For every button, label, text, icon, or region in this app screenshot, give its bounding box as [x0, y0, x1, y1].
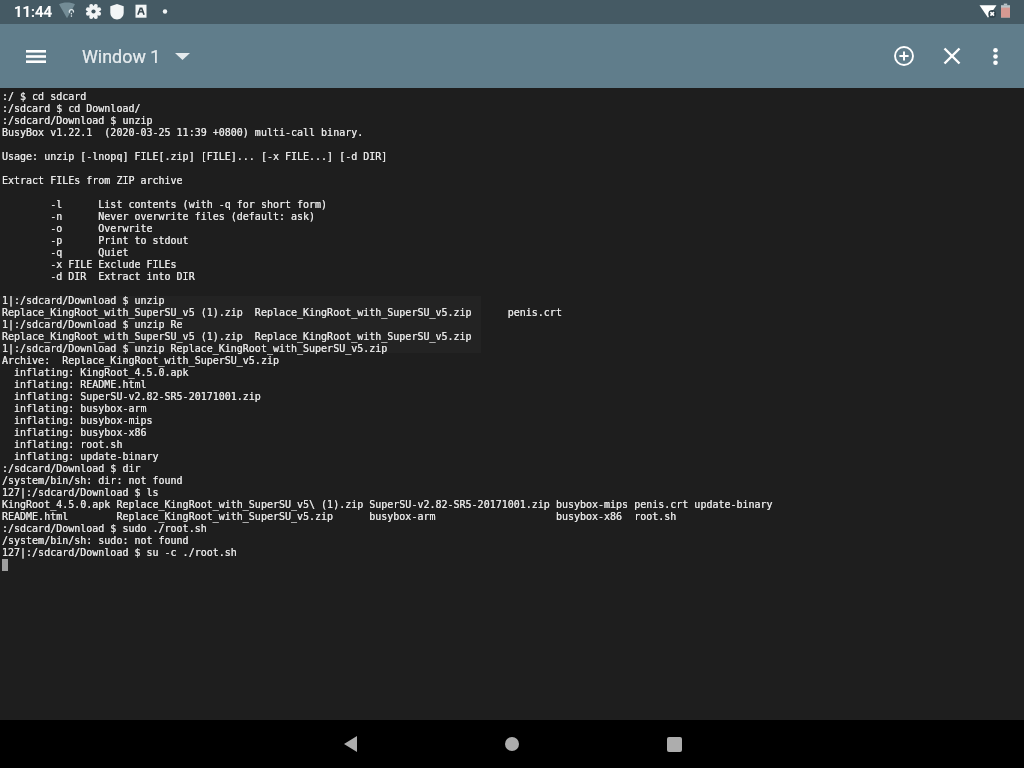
staticText: KingRoot_4.5.0.apk Replace_KingRoot_with… — [2, 499, 773, 511]
staticText: inflating: root.sh — [2, 439, 123, 451]
button[interactable]: Back — [326, 720, 374, 768]
button[interactable]: Close session — [928, 24, 976, 88]
staticText: 1|:/sdcard/Download $ unzip Replace_King… — [2, 343, 388, 355]
button[interactable]: Recent apps — [650, 720, 698, 768]
staticText: Replace_KingRoot_with_SuperSU_v5 (1).zip… — [2, 331, 472, 343]
staticText: Extract FILEs from ZIP archive — [2, 175, 183, 187]
button[interactable]: Open navigation drawer — [0, 24, 72, 88]
staticText: -d DIR Extract into DIR — [2, 271, 195, 283]
staticText: Replace_KingRoot_with_SuperSU_v5 (1).zip… — [2, 307, 562, 319]
staticText: -x FILE Exclude FILEs — [2, 259, 177, 271]
staticText: inflating: KingRoot_4.5.0.apk — [2, 367, 189, 379]
staticText: inflating: README.html — [2, 379, 147, 391]
staticText: :/sdcard/Download $ unzip — [2, 115, 153, 127]
button[interactable]: More options — [976, 24, 1014, 88]
staticText: -q Quiet — [2, 247, 129, 259]
staticText: 127|:/sdcard/Download $ su -c ./root.sh — [2, 547, 237, 559]
staticText: -p Print to stdout — [2, 235, 189, 247]
staticText: 1|:/sdcard/Download $ unzip Re — [2, 319, 183, 331]
staticText: Archive: Replace_KingRoot_with_SuperSU_v… — [2, 355, 279, 367]
staticText: README.html Replace_KingRoot_with_SuperS… — [2, 511, 677, 523]
button[interactable]: Window 1 — [72, 24, 202, 88]
staticText: :/sdcard/Download $ dir — [2, 463, 141, 475]
staticText: :/sdcard $ cd Download/ — [2, 103, 141, 115]
staticText: 1|:/sdcard/Download $ unzip — [2, 295, 165, 307]
staticText: /system/bin/sh: dir: not found — [2, 475, 183, 487]
staticText: 127|:/sdcard/Download $ ls — [2, 487, 159, 499]
staticText: inflating: busybox-mips — [2, 415, 153, 427]
staticText: inflating: busybox-x86 — [2, 427, 147, 439]
staticText: :/sdcard/Download $ sudo ./root.sh — [2, 523, 207, 535]
staticText: :/ $ cd sdcard — [2, 91, 87, 103]
staticText: 11:44 — [14, 3, 53, 21]
staticText: -l List contents (with -q for short form… — [2, 199, 328, 211]
staticText: inflating: busybox-arm — [2, 403, 147, 415]
staticText: BusyBox v1.22.1 (2020-03-25 11:39 +0800)… — [2, 127, 364, 139]
staticText: -o Overwrite — [2, 223, 153, 235]
staticText: Window 1 — [82, 46, 161, 67]
staticText: -n Never overwrite files (default: ask) — [2, 211, 316, 223]
staticText: Usage: unzip [-lnopq] FILE[.zip] [FILE].… — [2, 151, 388, 163]
button[interactable]: Home — [488, 720, 536, 768]
staticText: /system/bin/sh: sudo: not found — [2, 535, 189, 547]
staticText: inflating: update-binary — [2, 451, 159, 463]
staticText: inflating: SuperSU-v2.82-SR5-20171001.zi… — [2, 391, 261, 403]
button[interactable]: New session — [880, 24, 928, 88]
